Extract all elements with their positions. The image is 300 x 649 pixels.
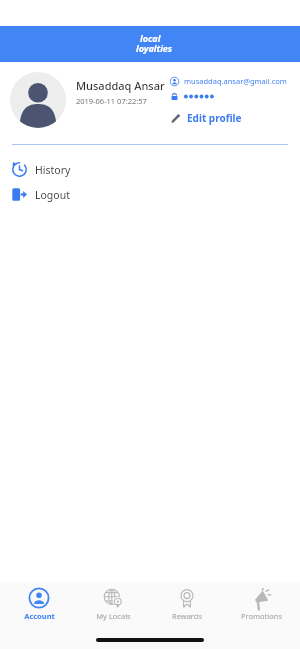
staticText: Logout	[35, 188, 70, 202]
button[interactable]: History	[0, 157, 300, 182]
staticText: Edit profile	[187, 111, 242, 125]
button[interactable]: Logout	[0, 182, 300, 207]
button[interactable]: My Locals	[78, 588, 148, 621]
staticText: 2019-06-11 07:22:57	[76, 96, 147, 106]
button[interactable]: Profile photo	[10, 72, 66, 128]
button[interactable]: Promotions	[226, 588, 296, 621]
staticText: History	[35, 163, 71, 177]
staticText: loyalties	[136, 42, 173, 54]
staticText: Rewards	[172, 611, 202, 621]
staticText: local	[140, 32, 161, 44]
staticText: My Locals	[96, 611, 131, 621]
button[interactable]: Account	[4, 588, 74, 621]
staticText: Musaddaq Ansar	[76, 78, 165, 93]
button[interactable]: Rewards	[152, 588, 222, 621]
staticText: musaddaq.ansar@gmail.com	[184, 76, 287, 86]
staticText: Account	[24, 611, 55, 621]
staticText: Promotions	[241, 611, 282, 621]
button[interactable]: Edit profile	[170, 111, 242, 125]
